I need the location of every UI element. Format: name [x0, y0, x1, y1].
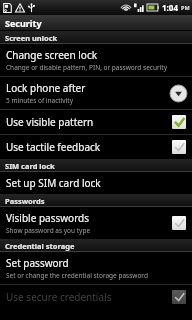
button[interactable]: Unchecked [171, 289, 187, 305]
staticText: Use tactile feedback [6, 140, 101, 154]
staticText: Change screen lock [6, 48, 98, 62]
staticText: Set password [6, 256, 69, 270]
staticText: Set or change the credential storage pas… [6, 271, 148, 280]
button[interactable]: Set password [0, 252, 192, 284]
button[interactable]: Set up SIM card lock [0, 172, 192, 194]
staticText: Show password as you type [6, 226, 91, 235]
button[interactable]: Change screen lock [0, 44, 192, 76]
staticText: Credential storage [5, 241, 75, 251]
staticText: Visible passwords [6, 211, 90, 225]
button[interactable]: Use tactile feedback [0, 135, 192, 159]
staticText: Change or disable pattern, PIN, or passw… [6, 63, 167, 72]
staticText: Use visible pattern [6, 115, 94, 129]
staticText: SIM card lock [5, 161, 55, 171]
button[interactable]: Use secure credentials [0, 285, 192, 309]
button[interactable]: Use visible pattern [0, 110, 192, 134]
staticText: Security [5, 17, 42, 29]
button[interactable]: Visible passwords [0, 207, 192, 239]
staticText: Set up SIM card lock [6, 176, 101, 190]
staticText: 5 minutes of inactivity [6, 96, 73, 105]
staticText: Use secure credentials [6, 290, 112, 304]
button[interactable]: Lock phone after [0, 77, 192, 109]
button[interactable]: Unchecked [171, 215, 187, 231]
staticText: Lock phone after [6, 81, 86, 95]
staticText: PM [181, 4, 190, 11]
staticText: 1:04 [162, 2, 178, 13]
button[interactable]: Choose lock timeout [170, 85, 187, 102]
staticText: Passwords [5, 196, 45, 206]
button[interactable]: Unchecked [171, 139, 187, 155]
button[interactable]: Checked [171, 114, 187, 130]
staticText: Screen unlock [5, 33, 58, 43]
